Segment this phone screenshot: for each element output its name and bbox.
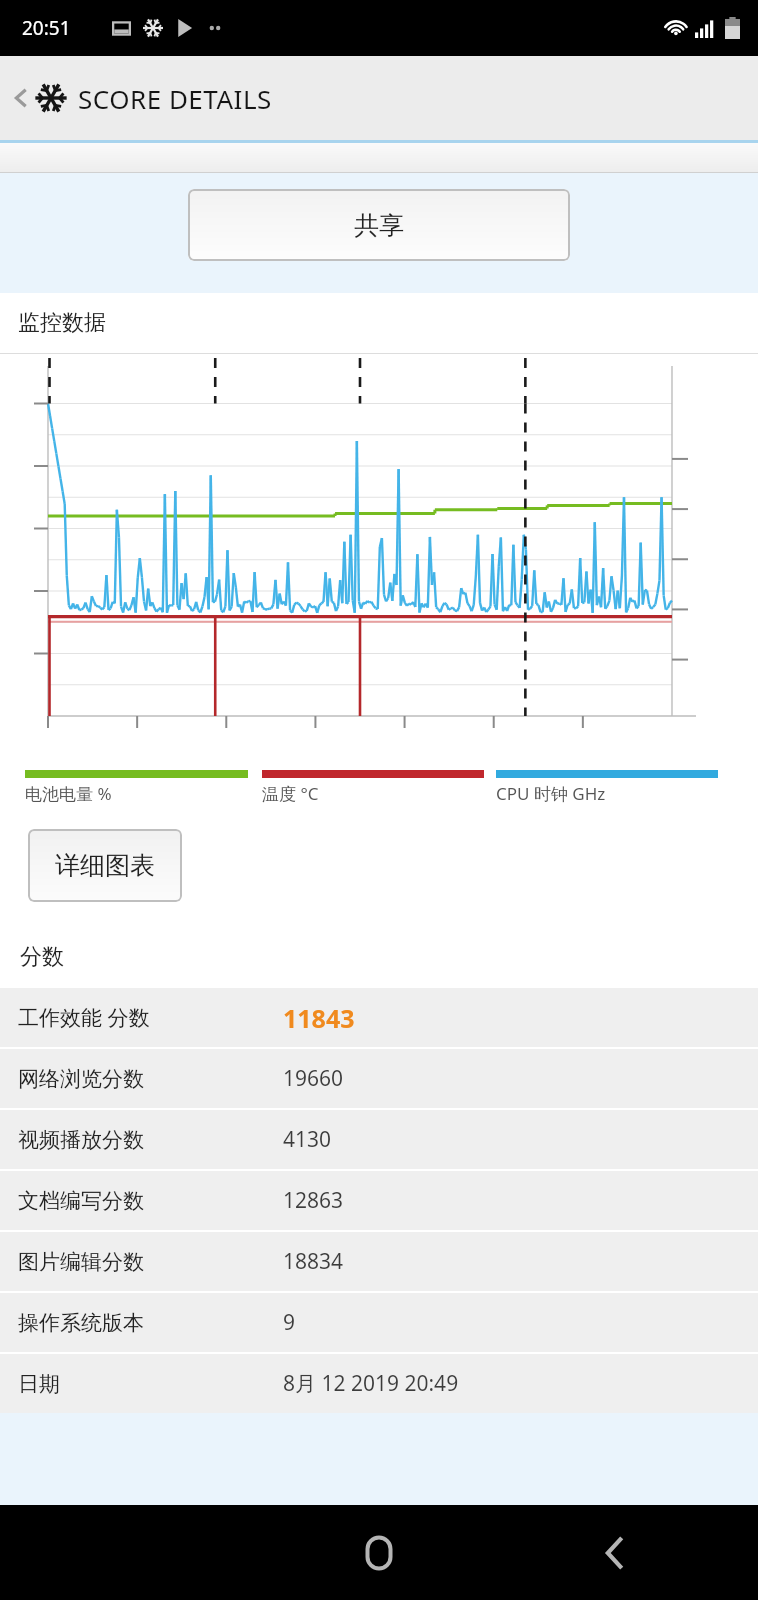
staticText: 图片编辑分数 [18, 1249, 283, 1275]
staticText: 日期 [18, 1371, 283, 1397]
button[interactable]: 工作效能 分数 [0, 988, 758, 1047]
staticText: CPU 时钟 GHz [496, 782, 718, 805]
button[interactable]: 视频播放分数 [0, 1110, 758, 1169]
staticText: 分数 [20, 943, 64, 971]
staticText: 9 [283, 1308, 296, 1337]
button[interactable]: 网络浏览分数 [0, 1049, 758, 1108]
button[interactable]: 日期 [0, 1354, 758, 1413]
button[interactable]: 操作系统版本 [0, 1293, 758, 1352]
button[interactable]: Back [0, 56, 758, 140]
staticText: 操作系统版本 [18, 1310, 283, 1336]
button[interactable]: 共享 [188, 189, 570, 261]
staticText: 电池电量 % [25, 782, 248, 805]
staticText: 视频播放分数 [18, 1127, 283, 1153]
button[interactable]: Back [582, 1520, 648, 1586]
button[interactable]: Home [346, 1520, 412, 1586]
staticText: 文档编写分数 [18, 1188, 283, 1214]
staticText: 监控数据 [18, 309, 106, 337]
staticText: 20:51 [22, 15, 71, 41]
staticText: 19660 [283, 1064, 344, 1093]
button[interactable]: 详细图表 [28, 829, 182, 902]
button[interactable]: 文档编写分数 [0, 1171, 758, 1230]
staticText: 温度 °C [262, 782, 484, 805]
button[interactable]: 图片编辑分数 [0, 1232, 758, 1291]
other: Back [8, 85, 34, 111]
staticText: SCORE DETAILS [78, 81, 272, 116]
staticText: 11843 [283, 1001, 355, 1035]
staticText: 详细图表 [55, 850, 155, 881]
staticText: 18834 [283, 1247, 344, 1276]
staticText: 12863 [283, 1186, 344, 1215]
staticText: 工作效能 分数 [18, 1003, 283, 1032]
staticText: 网络浏览分数 [18, 1066, 283, 1092]
staticText: 4130 [283, 1125, 332, 1154]
staticText: 8月 12 2019 20:49 [283, 1369, 459, 1398]
staticText: 共享 [354, 210, 404, 241]
